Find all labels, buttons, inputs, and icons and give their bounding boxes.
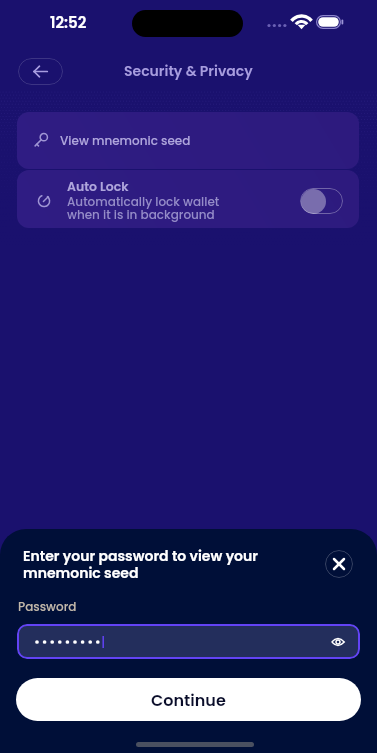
staticText: Enter your password to view your mnemoni… — [23, 546, 258, 583]
staticText: Password — [18, 598, 77, 615]
staticText: 12:52 — [50, 12, 87, 33]
button[interactable]: Auto lock toggle — [300, 188, 343, 214]
button[interactable]: Back — [18, 58, 63, 85]
button[interactable]: Show password — [17, 624, 360, 659]
button[interactable]: Continue — [16, 678, 361, 721]
staticText: View mnemonic seed — [60, 132, 191, 149]
button[interactable]: View mnemonic seed — [17, 112, 359, 169]
button[interactable]: Show password — [327, 631, 349, 653]
staticText: Auto Lock — [67, 178, 129, 195]
button[interactable]: Auto Lock — [17, 170, 359, 228]
staticText: Automatically lock wallet when it is in … — [67, 193, 220, 223]
staticText: Continue — [151, 689, 226, 711]
staticText: Security & Privacy — [124, 61, 253, 81]
button[interactable]: Close — [325, 550, 353, 578]
